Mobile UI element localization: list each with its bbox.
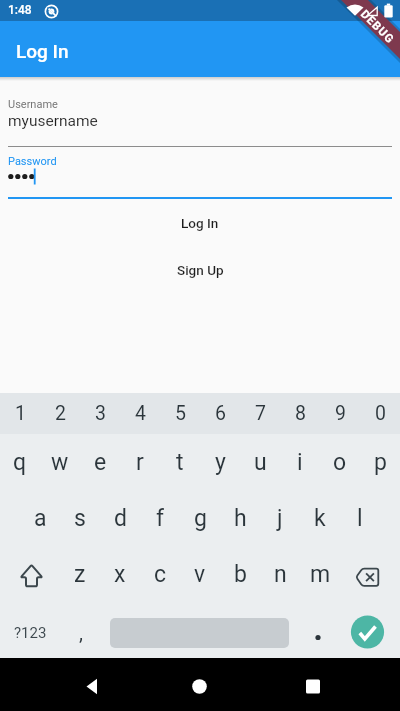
staticText: Log In — [16, 40, 69, 62]
staticText: Sign Up — [177, 262, 224, 278]
staticText: o — [333, 449, 347, 476]
staticText: f — [156, 505, 164, 532]
button[interactable]: c — [140, 546, 180, 602]
staticText: s — [74, 505, 86, 532]
button[interactable] — [290, 664, 335, 709]
button[interactable]: n — [260, 546, 300, 602]
staticText: z — [74, 561, 86, 588]
button[interactable]: 1 — [0, 393, 40, 434]
staticText: p — [374, 449, 387, 476]
button[interactable]: m — [300, 546, 340, 602]
button[interactable]: w — [40, 434, 80, 490]
button[interactable]: v — [180, 546, 220, 602]
button[interactable]: 8 — [280, 393, 320, 434]
staticText: q — [13, 449, 27, 476]
button[interactable] — [340, 602, 400, 658]
button[interactable]: q — [0, 434, 40, 490]
button[interactable] — [177, 664, 222, 709]
staticText: Username — [8, 98, 58, 111]
button[interactable]: a — [20, 490, 60, 546]
staticText: m — [310, 561, 331, 588]
button[interactable]: 3 — [80, 393, 120, 434]
staticText: j — [277, 505, 283, 532]
button[interactable]: f — [140, 490, 180, 546]
staticText: w — [51, 449, 69, 476]
button[interactable]: 9 — [320, 393, 360, 434]
staticText: 4 — [135, 402, 146, 425]
button[interactable] — [0, 90, 400, 150]
staticText: a — [34, 505, 47, 532]
staticText: l — [357, 505, 363, 532]
button[interactable]: t — [160, 434, 200, 490]
staticText: r — [136, 449, 144, 476]
staticText: 8 — [295, 402, 306, 425]
staticText: h — [234, 505, 247, 532]
button[interactable]: k — [300, 490, 340, 546]
staticText: 5 — [175, 402, 186, 425]
staticText: i — [297, 449, 303, 476]
button[interactable]: Log In — [160, 208, 240, 238]
staticText: e — [94, 449, 107, 476]
staticText: g — [194, 505, 207, 532]
button[interactable]: , — [60, 602, 100, 658]
button[interactable]: 2 — [40, 393, 80, 434]
button[interactable]: ?123 — [0, 602, 60, 658]
staticText: 0 — [375, 402, 386, 425]
staticText: 3 — [95, 402, 106, 425]
button[interactable]: y — [200, 434, 240, 490]
button[interactable] — [0, 150, 400, 200]
button[interactable]: j — [260, 490, 300, 546]
button[interactable] — [100, 602, 300, 658]
button[interactable]: 0 — [360, 393, 400, 434]
staticText: y — [215, 449, 226, 476]
button[interactable]: p — [360, 434, 400, 490]
button[interactable]: 4 — [120, 393, 160, 434]
button[interactable]: g — [180, 490, 220, 546]
staticText: 9 — [335, 402, 346, 425]
button[interactable] — [0, 546, 60, 602]
button[interactable]: i — [280, 434, 320, 490]
staticText: 1 — [15, 402, 26, 425]
button[interactable]: h — [220, 490, 260, 546]
button[interactable] — [340, 546, 400, 602]
button[interactable]: x — [100, 546, 140, 602]
staticText: n — [274, 561, 287, 588]
staticText: t — [176, 449, 184, 476]
staticText: c — [154, 561, 167, 588]
button[interactable]: e — [80, 434, 120, 490]
staticText: myusername — [8, 112, 98, 130]
button[interactable]: r — [120, 434, 160, 490]
staticText: DEBUG — [359, 7, 397, 46]
button[interactable]: Sign Up — [155, 255, 245, 285]
staticText: 2 — [55, 402, 66, 425]
staticText: u — [254, 449, 267, 476]
staticText: k — [314, 505, 326, 532]
button[interactable]: o — [320, 434, 360, 490]
staticText: 1:48 — [8, 3, 32, 17]
staticText: d — [114, 505, 127, 532]
button[interactable] — [300, 602, 340, 658]
staticText: 6 — [215, 402, 226, 425]
staticText: Log In — [181, 215, 219, 231]
staticText: Password — [8, 155, 57, 168]
staticText: 7 — [255, 402, 266, 425]
button[interactable]: 5 — [160, 393, 200, 434]
button[interactable]: d — [100, 490, 140, 546]
button[interactable]: z — [60, 546, 100, 602]
staticText: x — [114, 561, 126, 588]
staticText: v — [194, 561, 206, 588]
button[interactable]: 6 — [200, 393, 240, 434]
button[interactable] — [66, 664, 111, 709]
button[interactable]: b — [220, 546, 260, 602]
staticText: b — [234, 561, 247, 588]
button[interactable]: l — [340, 490, 380, 546]
button[interactable]: 7 — [240, 393, 280, 434]
button[interactable]: u — [240, 434, 280, 490]
staticText: , — [79, 621, 83, 644]
staticText: ?123 — [14, 624, 47, 642]
button[interactable]: s — [60, 490, 100, 546]
